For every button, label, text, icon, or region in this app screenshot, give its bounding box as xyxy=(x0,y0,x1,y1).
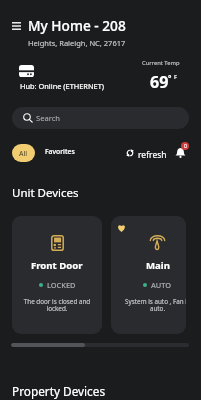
staticText: AUTO xyxy=(151,280,172,290)
staticText: 0 xyxy=(184,143,187,150)
staticText: Unit Devices xyxy=(12,185,79,201)
staticText: 69 xyxy=(150,71,169,93)
button[interactable]: All xyxy=(12,144,35,162)
button[interactable]: Favorites xyxy=(45,147,75,156)
staticText: Front Door xyxy=(31,259,83,272)
staticText: The door is closed and locked. xyxy=(22,297,92,313)
staticText: All xyxy=(19,149,28,158)
staticText: Heights, Raleigh, NC, 27617 xyxy=(28,38,126,48)
staticText: Main xyxy=(146,259,170,272)
staticText: My Home - 208 xyxy=(28,16,126,35)
staticText: Hub: Online (ETHERNET) xyxy=(20,81,104,91)
button[interactable]: Open navigation menu xyxy=(8,18,24,34)
button[interactable]: Notifications xyxy=(173,140,193,160)
staticText: System is auto , Fan is auto. xyxy=(121,297,186,313)
button[interactable]: Main xyxy=(111,216,186,334)
button[interactable]: Front Door xyxy=(12,216,102,334)
button[interactable]: Search xyxy=(12,107,189,129)
staticText: F xyxy=(174,73,178,81)
staticText: LOCKED xyxy=(47,280,76,290)
staticText: refresh xyxy=(138,149,167,161)
staticText: Search xyxy=(36,113,61,123)
staticText: Current Temp xyxy=(142,59,180,67)
staticText: ° xyxy=(168,72,172,83)
staticText: Property Devices xyxy=(12,383,106,399)
button[interactable]: refresh xyxy=(124,146,153,158)
